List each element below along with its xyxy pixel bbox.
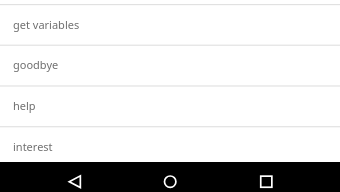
- button[interactable]: Recent apps: [249, 166, 283, 192]
- staticText: interest: [13, 139, 53, 154]
- button[interactable]: goodbye: [0, 45, 340, 86]
- staticText: goodbye: [13, 57, 59, 72]
- button[interactable]: interest: [0, 127, 340, 162]
- button[interactable]: help: [0, 86, 340, 127]
- button[interactable]: Home: [153, 166, 187, 192]
- button[interactable]: get variables: [0, 5, 340, 46]
- staticText: help: [13, 98, 36, 113]
- staticText: get variables: [13, 17, 80, 32]
- button[interactable]: Back: [57, 166, 91, 192]
